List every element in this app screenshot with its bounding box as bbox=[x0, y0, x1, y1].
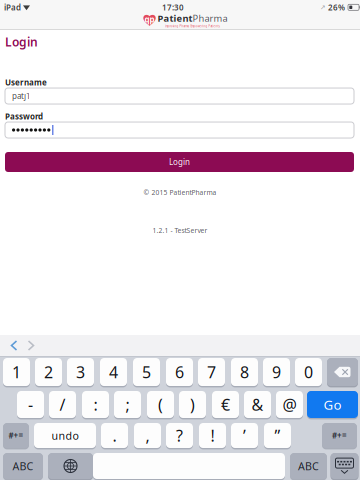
staticText: iPad bbox=[4, 2, 21, 13]
button[interactable]: & bbox=[244, 391, 271, 418]
staticText: - bbox=[28, 394, 33, 415]
staticText: 26% bbox=[328, 2, 345, 13]
staticText: 9 bbox=[272, 361, 281, 383]
staticText: ” bbox=[274, 425, 280, 446]
button[interactable]: Letters bbox=[290, 453, 327, 479]
staticText: ; bbox=[125, 394, 129, 415]
staticText: Login bbox=[169, 157, 190, 167]
staticText: 1 bbox=[12, 361, 21, 383]
button[interactable]: undo bbox=[34, 423, 96, 448]
staticText: ABC bbox=[298, 459, 319, 473]
button[interactable]: 5 bbox=[133, 358, 160, 386]
button[interactable]: 8 bbox=[231, 358, 258, 386]
button[interactable]: 0 bbox=[295, 358, 322, 386]
staticText: : bbox=[93, 394, 97, 415]
button[interactable]: ? bbox=[166, 423, 193, 448]
button[interactable]: ’ bbox=[231, 423, 258, 448]
staticText: ( bbox=[158, 394, 163, 415]
button[interactable]: Login bbox=[5, 152, 354, 172]
staticText: Login bbox=[5, 34, 38, 50]
staticText: qp bbox=[144, 14, 154, 25]
button[interactable]: Delete bbox=[327, 358, 358, 386]
staticText: Pharma bbox=[192, 12, 227, 24]
button[interactable]: Next keyboard bbox=[48, 453, 93, 479]
staticText: ! bbox=[210, 425, 214, 446]
staticText: & bbox=[251, 394, 263, 415]
staticText: ) bbox=[190, 394, 195, 415]
staticText: @ bbox=[282, 394, 296, 415]
staticText: 7 bbox=[207, 361, 216, 383]
button[interactable]: 9 bbox=[263, 358, 290, 386]
button[interactable]: Username bbox=[5, 88, 354, 104]
button[interactable]: Hide keyboard bbox=[330, 453, 358, 479]
button[interactable]: ” bbox=[264, 423, 291, 448]
staticText: 8 bbox=[240, 361, 249, 383]
staticText: © 2015 PatientPharma bbox=[143, 188, 216, 197]
button[interactable]: ( bbox=[147, 391, 174, 418]
button[interactable]: ; bbox=[114, 391, 141, 418]
staticText: #+= bbox=[8, 430, 23, 441]
button[interactable]: 1 bbox=[3, 358, 30, 386]
staticText: Improving Pharma. Empowering Patients. bbox=[164, 24, 220, 28]
staticText: ABC bbox=[12, 459, 33, 473]
staticText: 6 bbox=[175, 361, 184, 383]
staticText: ? bbox=[176, 425, 183, 446]
button[interactable]: Symbols bbox=[3, 423, 29, 448]
button[interactable]: Previous field bbox=[3, 335, 25, 356]
staticText: Patient bbox=[157, 12, 192, 24]
button[interactable]: ) bbox=[179, 391, 206, 418]
button[interactable]: Symbols bbox=[322, 423, 357, 448]
button[interactable]: Next field bbox=[20, 335, 42, 356]
button[interactable]: 4 bbox=[100, 358, 127, 386]
button[interactable]: / bbox=[49, 391, 76, 418]
staticText: 4 bbox=[109, 361, 118, 383]
staticText: ↗ bbox=[320, 3, 326, 11]
button[interactable]: @ bbox=[276, 391, 303, 418]
staticText: € bbox=[221, 394, 230, 415]
staticText: 5 bbox=[142, 361, 151, 383]
staticText: . bbox=[112, 425, 116, 446]
button[interactable]: ! bbox=[199, 423, 226, 448]
staticText: Password bbox=[5, 111, 43, 122]
button[interactable]: Password bbox=[5, 122, 354, 138]
staticText: / bbox=[59, 394, 65, 415]
button[interactable]: 3 bbox=[67, 358, 94, 386]
staticText: 2 bbox=[44, 361, 53, 383]
staticText: Go bbox=[323, 396, 341, 413]
staticText: undo bbox=[51, 428, 78, 443]
staticText: 0 bbox=[304, 361, 313, 383]
staticText: patj1 bbox=[12, 91, 31, 101]
staticText: #+= bbox=[332, 430, 347, 441]
button[interactable]: Go bbox=[307, 391, 358, 418]
staticText: 3 bbox=[76, 361, 85, 383]
staticText: 17:30 bbox=[162, 2, 184, 13]
button[interactable]: Letters bbox=[3, 453, 43, 479]
button[interactable]: - bbox=[17, 391, 44, 418]
button[interactable]: , bbox=[134, 423, 161, 448]
button[interactable]: 6 bbox=[166, 358, 193, 386]
button[interactable]: . bbox=[101, 423, 128, 448]
button[interactable]: : bbox=[82, 391, 109, 418]
button[interactable]: 2 bbox=[35, 358, 62, 386]
staticText: , bbox=[145, 425, 149, 446]
button[interactable]: € bbox=[212, 391, 239, 418]
button[interactable]: 7 bbox=[198, 358, 225, 386]
staticText: Username bbox=[5, 77, 47, 88]
staticText: 1.2.1 - TestServer bbox=[152, 226, 207, 235]
staticText: ’ bbox=[243, 425, 246, 446]
